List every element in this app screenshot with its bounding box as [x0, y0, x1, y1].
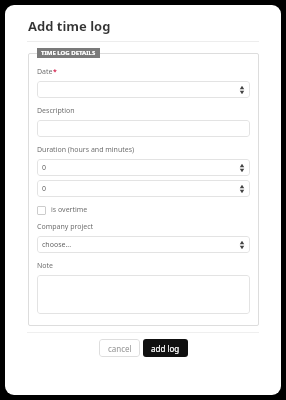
button[interactable]: 0 [37, 180, 250, 197]
staticText: Duration (hours and minutes) [37, 145, 135, 155]
button[interactable]: is overtime [37, 205, 88, 215]
staticText: TIME LOG DETAILS [41, 49, 96, 57]
staticText: is overtime [51, 205, 88, 215]
staticText: choose... [42, 240, 72, 250]
button[interactable] [37, 275, 250, 314]
staticText: Description [37, 106, 75, 116]
button[interactable]: cancel [99, 339, 140, 357]
staticText: Company project [37, 222, 94, 232]
staticText: add log [151, 343, 180, 354]
button[interactable] [37, 81, 250, 98]
staticText: 0 [42, 184, 47, 194]
button[interactable]: choose... [37, 236, 250, 253]
staticText: Add time log [28, 17, 111, 35]
button[interactable]: add log [143, 339, 188, 357]
staticText: * [53, 67, 57, 77]
staticText: 0 [42, 163, 47, 173]
staticText: Note [37, 261, 54, 271]
staticText: cancel [108, 343, 132, 354]
button[interactable]: 0 [37, 159, 250, 176]
button[interactable] [37, 120, 250, 137]
staticText: Date [37, 67, 53, 77]
